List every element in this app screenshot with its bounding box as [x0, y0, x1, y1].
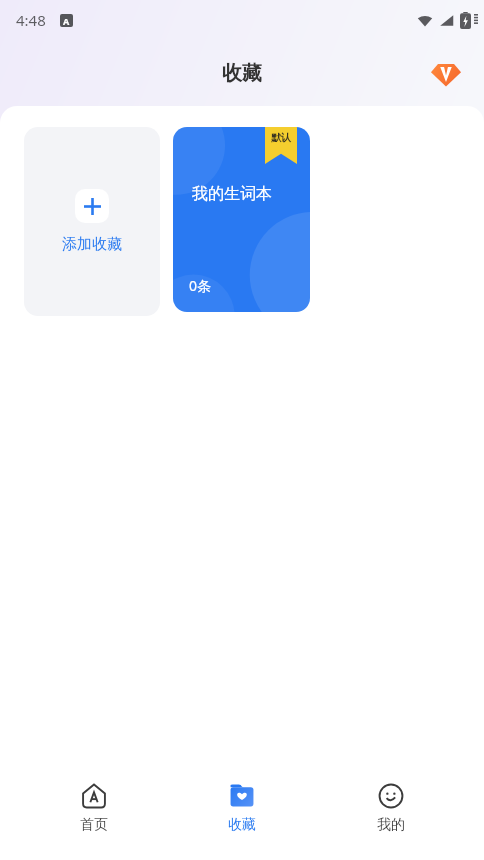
button[interactable]: 收藏 — [187, 776, 297, 834]
staticText: 首页 — [80, 816, 108, 834]
staticText: 0条 — [189, 276, 212, 295]
button[interactable]: 添加收藏 — [24, 127, 160, 316]
staticText: 默认 — [271, 131, 291, 144]
staticText: 我的 — [377, 816, 405, 834]
button[interactable]: 我的 — [336, 776, 446, 834]
button[interactable]: 首页 — [39, 776, 149, 834]
button[interactable]: VIP — [426, 53, 466, 93]
button[interactable]: 默认 — [173, 127, 310, 312]
staticText: 4:48 — [16, 10, 46, 30]
staticText: A — [63, 15, 70, 27]
staticText: 添加收藏 — [62, 235, 122, 254]
staticText: 收藏 — [228, 816, 256, 834]
staticText: 我的生词本 — [192, 184, 272, 204]
staticText: 收藏 — [222, 61, 262, 86]
